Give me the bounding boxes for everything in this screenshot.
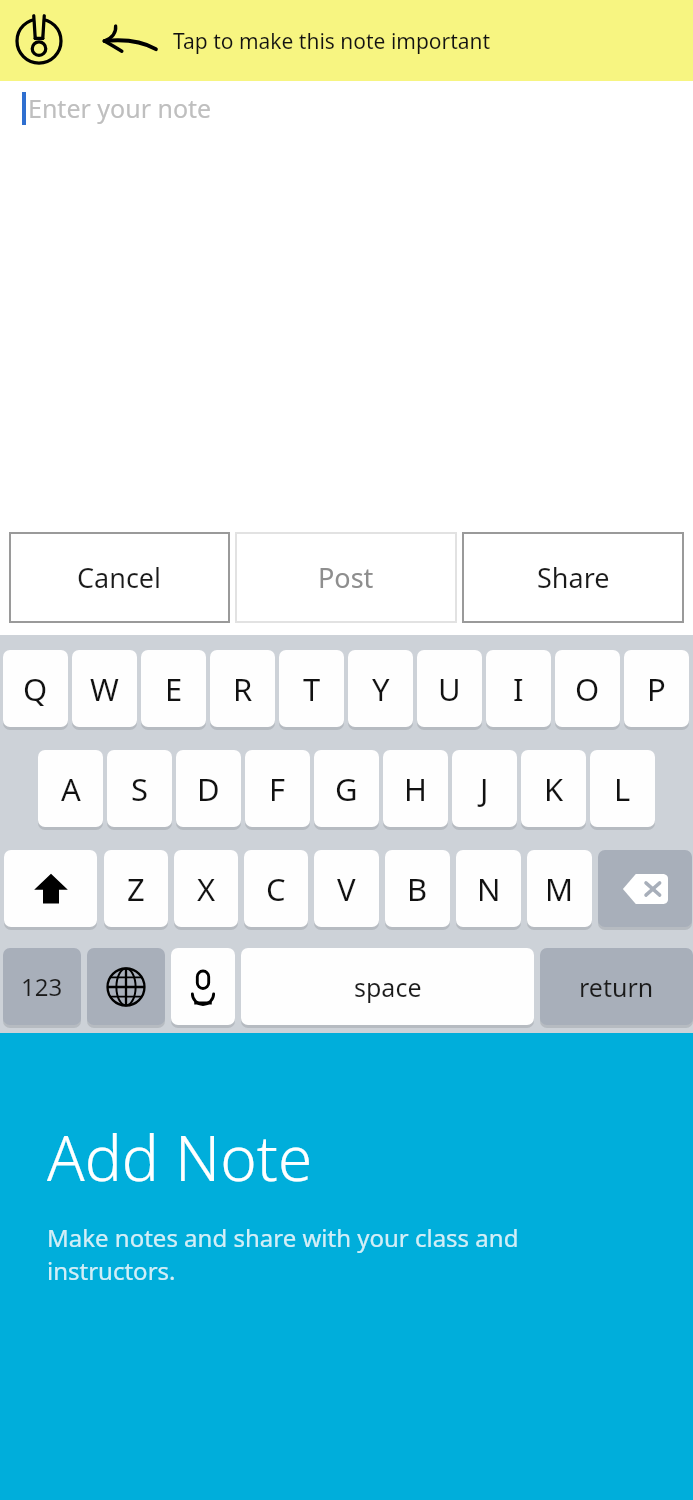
button[interactable]: N <box>456 850 521 927</box>
staticText: Z <box>127 868 145 910</box>
staticText: Y <box>372 668 390 710</box>
staticText: Q <box>23 668 48 710</box>
staticText: T <box>303 668 321 710</box>
button[interactable]: W <box>72 650 137 727</box>
button[interactable]: Y <box>348 650 413 727</box>
staticText: V <box>337 868 356 910</box>
button[interactable]: space <box>241 948 534 1025</box>
staticText: 123 <box>21 970 63 1003</box>
staticText: E <box>165 668 183 710</box>
button[interactable]: Post <box>235 532 457 623</box>
staticText: Post <box>318 559 374 596</box>
button[interactable]: S <box>107 750 172 827</box>
button[interactable]: V <box>314 850 379 927</box>
staticText: G <box>335 768 358 810</box>
other: Change keyboard <box>87 948 165 1028</box>
staticText: S <box>131 768 149 810</box>
staticText: Add Note <box>47 1115 313 1199</box>
staticText: X <box>197 868 216 910</box>
staticText: J <box>480 768 489 810</box>
button[interactable]: T <box>279 650 344 727</box>
staticText: B <box>407 868 428 910</box>
button[interactable]: J <box>452 750 517 827</box>
staticText: W <box>90 668 119 710</box>
staticText: P <box>647 668 666 710</box>
staticText: O <box>575 668 600 710</box>
button[interactable]: M <box>527 850 592 927</box>
other: Dictate <box>171 948 235 1028</box>
staticText: I <box>513 668 524 710</box>
staticText: R <box>233 668 253 710</box>
button[interactable]: Cancel <box>9 532 230 623</box>
button[interactable]: R <box>210 650 275 727</box>
button[interactable]: A <box>38 750 103 827</box>
staticText: U <box>438 668 461 710</box>
button[interactable]: P <box>624 650 689 727</box>
button[interactable]: Enter your note <box>0 81 693 135</box>
button[interactable]: X <box>174 850 238 927</box>
button[interactable]: E <box>141 650 206 727</box>
button[interactable]: G <box>314 750 379 827</box>
staticText: space <box>354 970 422 1004</box>
button[interactable]: I <box>486 650 551 727</box>
staticText: Make notes and share with your class and… <box>47 1221 583 1287</box>
staticText: Share <box>537 559 610 596</box>
button[interactable]: B <box>385 850 450 927</box>
staticText: C <box>266 868 286 910</box>
button[interactable] <box>171 948 235 1025</box>
button[interactable]: F <box>245 750 310 827</box>
staticText: M <box>545 868 574 910</box>
button[interactable]: Z <box>104 850 168 927</box>
staticText: H <box>404 768 427 810</box>
other: Shift <box>4 850 97 930</box>
button[interactable]: Share <box>462 532 684 623</box>
staticText: F <box>269 768 286 810</box>
staticText: N <box>477 868 501 910</box>
button[interactable]: Q <box>3 650 68 727</box>
button[interactable]: Important <box>0 0 693 81</box>
button[interactable] <box>598 850 692 927</box>
button[interactable]: return <box>540 948 693 1025</box>
button[interactable]: H <box>383 750 448 827</box>
staticText: K <box>544 768 564 810</box>
staticText: Enter your note <box>28 91 212 125</box>
staticText: A <box>61 768 81 810</box>
button[interactable]: K <box>521 750 586 827</box>
staticText: Cancel <box>77 559 162 596</box>
button[interactable]: L <box>590 750 655 827</box>
button[interactable]: O <box>555 650 620 727</box>
staticText: D <box>197 768 220 810</box>
button[interactable]: U <box>417 650 482 727</box>
button[interactable]: Important <box>13 15 65 67</box>
staticText: Tap to make this note important <box>173 27 491 56</box>
staticText: L <box>614 768 631 810</box>
button[interactable] <box>87 948 165 1025</box>
staticText: return <box>579 970 654 1004</box>
button[interactable] <box>4 850 97 927</box>
button[interactable]: 123 <box>3 948 81 1025</box>
button[interactable]: D <box>176 750 241 827</box>
button[interactable]: C <box>244 850 308 927</box>
other: Delete <box>598 850 692 930</box>
